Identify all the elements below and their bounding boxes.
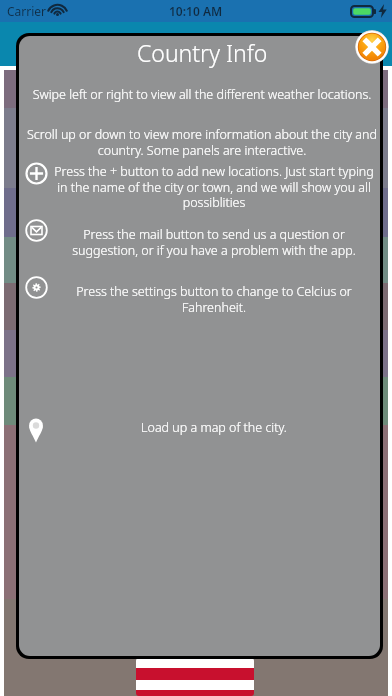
button[interactable]: Close bbox=[355, 30, 389, 64]
staticText: Scroll up or down to view more informati… bbox=[24, 126, 380, 158]
staticText: Press the settings button to change to C… bbox=[49, 283, 379, 315]
button[interactable]: Add location bbox=[21, 158, 51, 188]
staticText: Load up a map of the city. bbox=[49, 419, 379, 436]
button[interactable]: Map bbox=[21, 415, 51, 447]
button[interactable]: Mail bbox=[21, 215, 51, 245]
staticText: Press the + button to add new locations.… bbox=[49, 163, 379, 210]
staticText: Swipe left or right to view all the diff… bbox=[27, 86, 377, 103]
staticText: Press the mail button to send us a quest… bbox=[49, 226, 379, 258]
staticText: Carrier bbox=[7, 3, 47, 19]
staticText: 10:10 AM bbox=[169, 3, 223, 19]
button[interactable]: Settings bbox=[21, 272, 51, 302]
staticText: Country Info bbox=[137, 37, 268, 68]
